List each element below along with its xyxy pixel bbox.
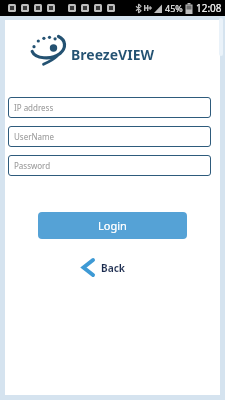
staticText: BreezeVIEW bbox=[71, 45, 155, 64]
staticText: Back bbox=[101, 261, 125, 275]
button[interactable]: Login bbox=[38, 212, 187, 239]
staticText: 45% bbox=[165, 2, 183, 14]
button[interactable]: UserName bbox=[8, 126, 211, 147]
button[interactable]: Password bbox=[8, 155, 211, 176]
staticText: UserName bbox=[14, 131, 55, 142]
staticText: IP address bbox=[14, 102, 54, 113]
button[interactable]: IP address bbox=[8, 97, 211, 118]
button[interactable]: Back bbox=[82, 260, 125, 275]
staticText: 12:08 bbox=[196, 1, 222, 15]
staticText: Login bbox=[98, 218, 127, 233]
staticText: Password bbox=[14, 160, 51, 171]
